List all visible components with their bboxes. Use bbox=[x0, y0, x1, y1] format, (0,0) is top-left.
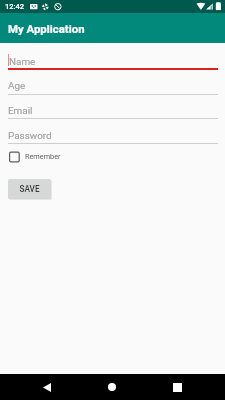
staticText: Name bbox=[9, 56, 36, 68]
staticText: Remember bbox=[25, 152, 61, 161]
button[interactable] bbox=[0, 97, 225, 119]
staticText: My Application bbox=[8, 22, 85, 35]
staticText: 12:42 bbox=[5, 2, 25, 11]
button[interactable]: Recent apps bbox=[163, 374, 191, 400]
button[interactable] bbox=[0, 73, 225, 95]
staticText: Age bbox=[8, 80, 26, 92]
button[interactable] bbox=[0, 48, 225, 70]
staticText: SAVE bbox=[19, 184, 40, 194]
staticText: Email bbox=[8, 105, 33, 117]
button[interactable]: Back bbox=[33, 374, 61, 400]
button[interactable]: SAVE bbox=[8, 179, 51, 199]
staticText: Password bbox=[8, 130, 52, 142]
button[interactable]: Remember bbox=[9, 151, 61, 162]
button[interactable] bbox=[0, 122, 225, 144]
button[interactable]: Home bbox=[98, 374, 126, 400]
